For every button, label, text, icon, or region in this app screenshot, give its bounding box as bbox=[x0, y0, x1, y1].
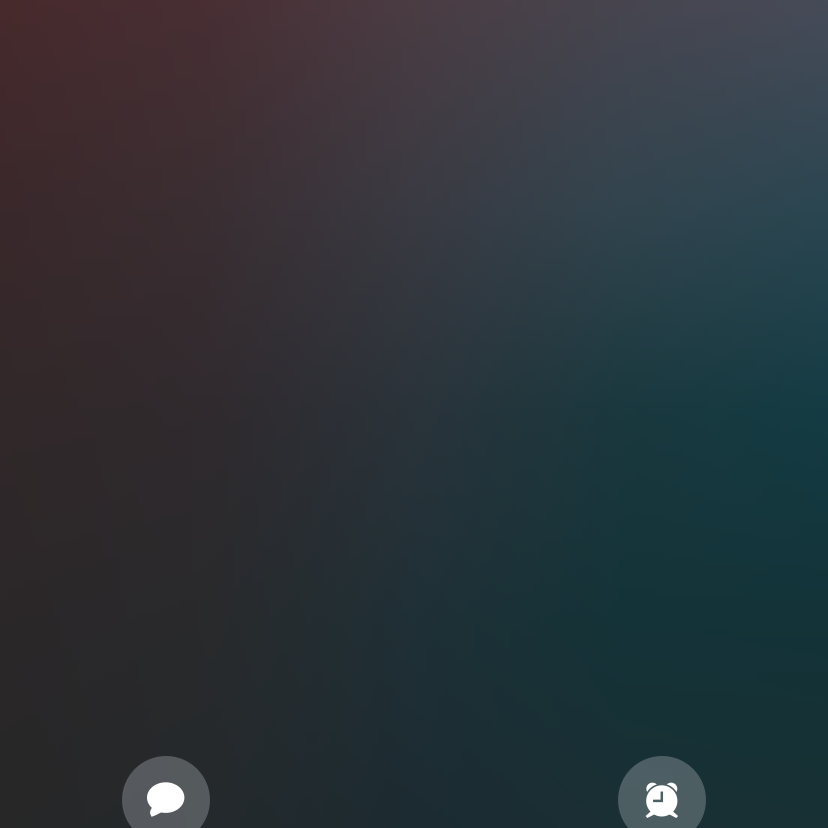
button[interactable]: Alarm bbox=[618, 756, 706, 828]
button[interactable]: Messages bbox=[122, 756, 210, 828]
